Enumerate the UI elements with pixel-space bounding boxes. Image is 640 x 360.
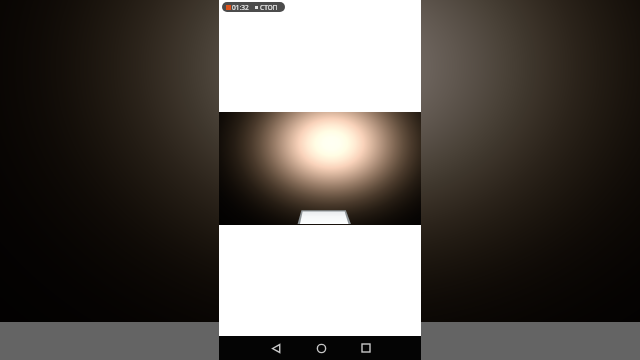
staticText: СТОП [260,3,278,12]
button[interactable]: Recent apps [354,336,378,360]
button[interactable]: Back [264,336,288,360]
staticText: 01:32 [232,3,249,12]
button[interactable]: Home [309,336,333,360]
button[interactable]: 01:32 [222,2,285,12]
